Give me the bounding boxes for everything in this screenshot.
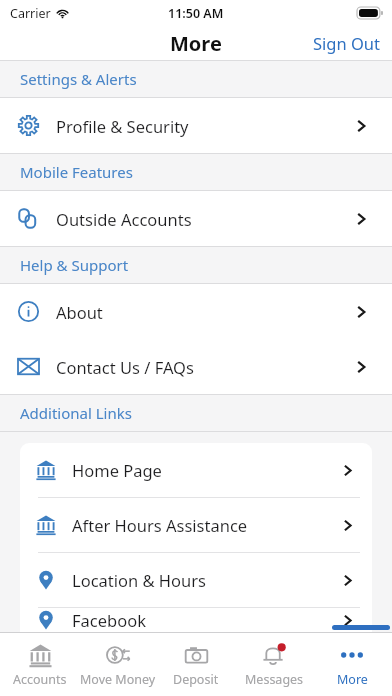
staticText: Location & Hours bbox=[72, 569, 206, 591]
staticText: Contact Us / FAQs bbox=[56, 356, 194, 378]
staticText: Facebook bbox=[72, 609, 146, 631]
staticText: Move Money bbox=[80, 671, 156, 688]
other: Deposit bbox=[185, 644, 208, 667]
button[interactable]: Outside Accounts bbox=[0, 191, 392, 246]
other: More bbox=[339, 651, 365, 659]
staticText: More bbox=[170, 30, 222, 57]
staticText: Profile & Security bbox=[56, 115, 189, 137]
button[interactable]: Location & Hours bbox=[20, 553, 372, 607]
staticText: Settings & Alerts bbox=[20, 69, 137, 89]
staticText: Sign Out bbox=[313, 32, 380, 54]
staticText: Messages bbox=[245, 671, 304, 688]
button[interactable]: Contact Us / FAQs bbox=[0, 339, 392, 394]
staticText: Help & Support bbox=[20, 255, 129, 275]
other: Move Money bbox=[106, 643, 130, 667]
button[interactable]: Sign Out bbox=[301, 26, 392, 60]
staticText: 11:50 AM bbox=[168, 5, 224, 22]
button[interactable]: Move Money bbox=[80, 633, 156, 696]
button[interactable]: About bbox=[0, 284, 392, 339]
button[interactable]: Home Page bbox=[20, 443, 372, 497]
staticText: More bbox=[337, 671, 368, 688]
other: Messages bbox=[262, 643, 286, 667]
staticText: About bbox=[56, 301, 103, 323]
button[interactable]: More bbox=[314, 633, 390, 696]
button[interactable]: Facebook bbox=[20, 608, 372, 632]
staticText: After Hours Assistance bbox=[72, 514, 248, 536]
staticText: Mobile Features bbox=[20, 162, 133, 182]
button[interactable]: Profile & Security bbox=[0, 98, 392, 153]
staticText: Deposit bbox=[173, 671, 219, 688]
staticText: Carrier bbox=[10, 5, 51, 22]
button[interactable]: Accounts bbox=[2, 633, 78, 696]
button[interactable]: After Hours Assistance bbox=[20, 498, 372, 552]
button[interactable]: Messages bbox=[236, 633, 312, 696]
button[interactable]: Deposit bbox=[158, 633, 234, 696]
staticText: Home Page bbox=[72, 459, 162, 481]
staticText: Accounts bbox=[13, 671, 67, 688]
staticText: Outside Accounts bbox=[56, 208, 192, 230]
staticText: Additional Links bbox=[20, 403, 132, 423]
other: Accounts bbox=[29, 644, 52, 667]
